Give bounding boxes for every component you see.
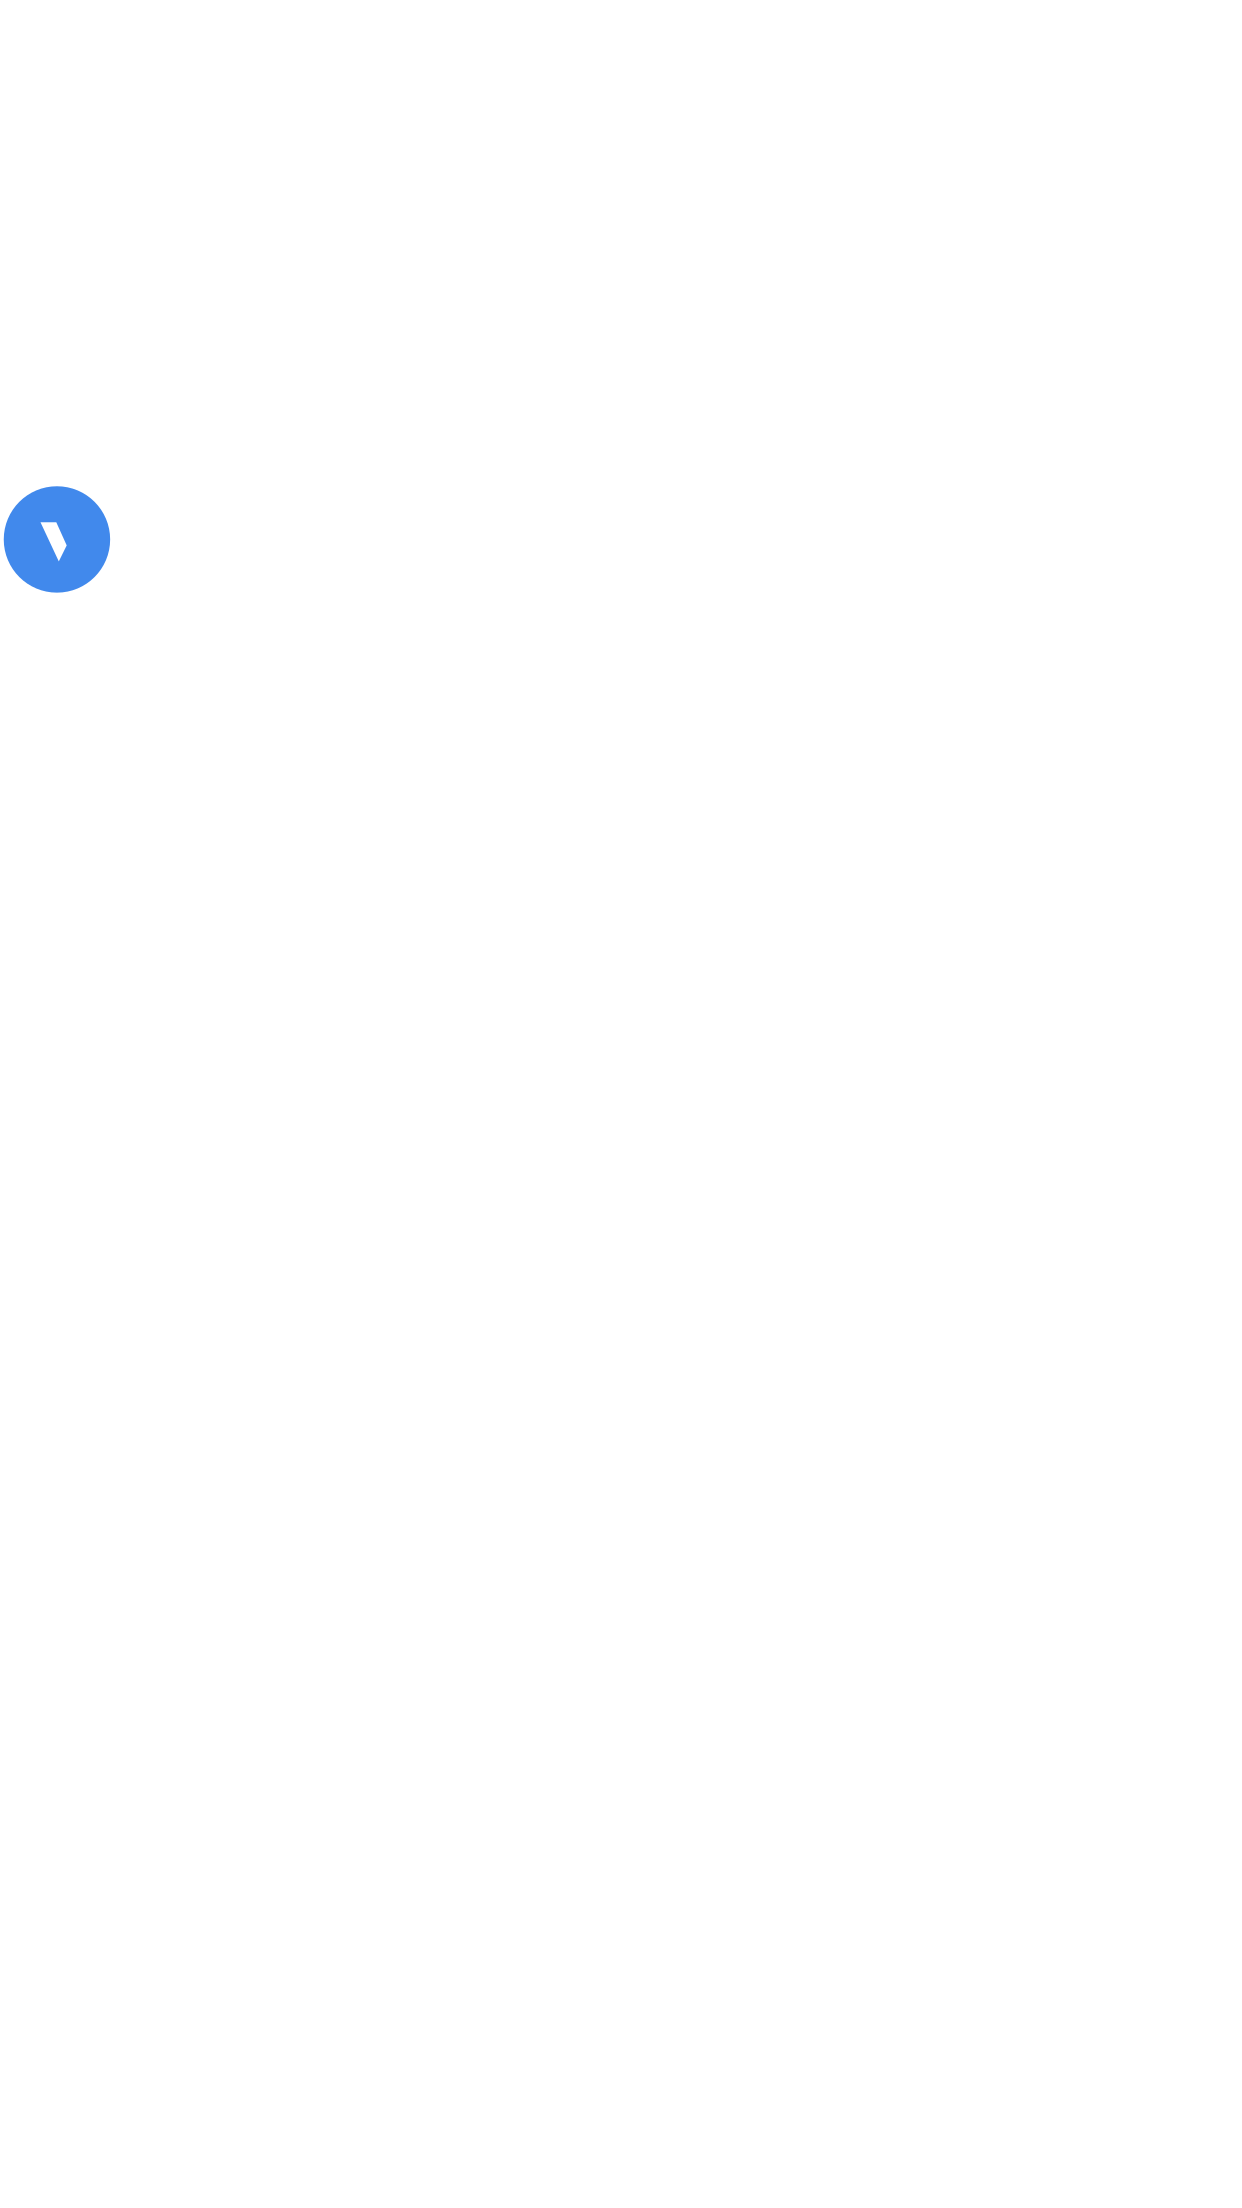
- button[interactable]: Home: [4, 486, 110, 593]
